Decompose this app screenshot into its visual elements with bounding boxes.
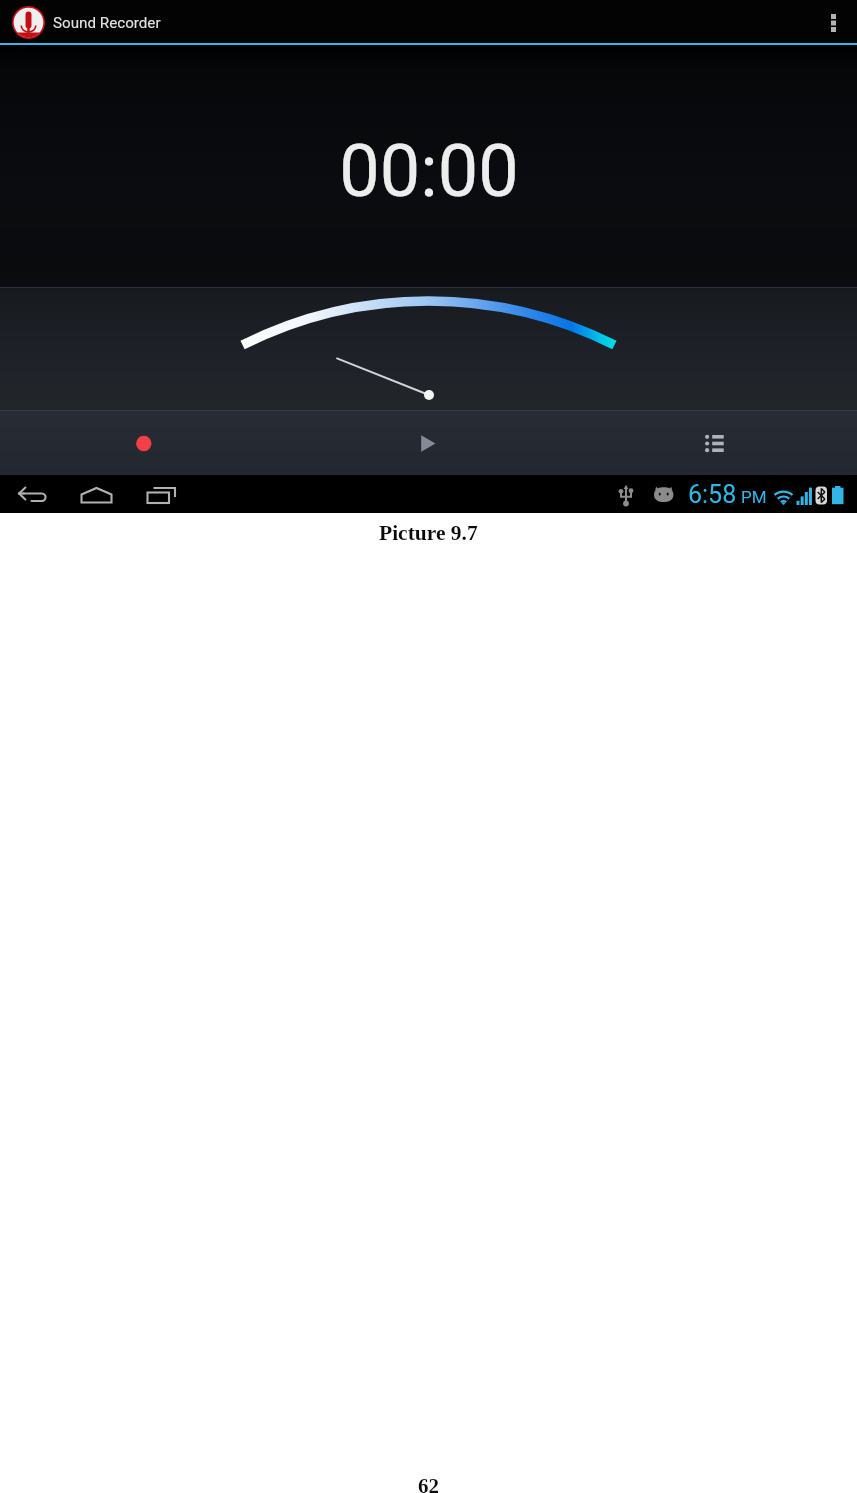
staticText: Sound Recorder (53, 14, 161, 32)
button[interactable]: Recordings list (571, 410, 857, 475)
button[interactable]: Back (8, 475, 56, 513)
staticText: 6:58 (688, 480, 737, 509)
staticText: 62 (418, 1474, 439, 1493)
button[interactable]: More options (810, 1, 856, 44)
staticText: Picture 9.7 (379, 521, 478, 545)
button[interactable]: Recent apps (136, 475, 184, 513)
staticText: PM (741, 487, 767, 507)
button[interactable]: Status bar, 6:58 PM (617, 475, 857, 513)
button[interactable]: Home (72, 475, 120, 513)
staticText: 00:00 (339, 129, 519, 213)
button[interactable]: Record (0, 410, 285, 475)
button[interactable]: Play (285, 410, 571, 475)
